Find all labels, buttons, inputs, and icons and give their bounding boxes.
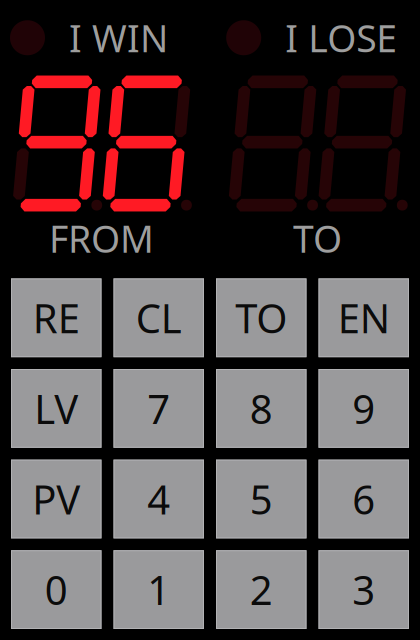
- button[interactable]: RE: [11, 278, 101, 357]
- staticText: 4: [147, 472, 170, 525]
- button[interactable]: PV: [11, 460, 101, 538]
- staticText: I WIN: [69, 13, 168, 63]
- staticText: LV: [34, 382, 78, 435]
- button[interactable]: 3: [318, 550, 409, 629]
- button[interactable]: 7: [113, 369, 204, 448]
- button[interactable]: 5: [216, 460, 306, 538]
- button[interactable]: TO: [216, 278, 306, 357]
- button[interactable]: 1: [113, 550, 204, 629]
- button[interactable]: 8: [216, 369, 306, 448]
- staticText: 8: [250, 382, 273, 435]
- staticText: TO: [235, 291, 287, 344]
- button[interactable]: 9: [318, 369, 409, 448]
- button[interactable]: 6: [318, 460, 409, 538]
- staticText: EN: [338, 291, 390, 344]
- staticText: PV: [32, 472, 80, 525]
- staticText: FROM: [49, 213, 154, 263]
- button[interactable]: 2: [216, 550, 306, 629]
- staticText: 3: [352, 563, 375, 616]
- staticText: 9: [352, 382, 375, 435]
- staticText: 0: [45, 563, 68, 616]
- button[interactable]: EN: [318, 278, 409, 357]
- button[interactable]: 0: [11, 550, 101, 629]
- staticText: 7: [147, 382, 170, 435]
- button[interactable]: LV: [11, 369, 101, 448]
- button[interactable]: 4: [113, 460, 204, 538]
- staticText: I LOSE: [285, 13, 397, 63]
- staticText: 6: [352, 472, 375, 525]
- staticText: TO: [293, 213, 342, 263]
- staticText: 2: [250, 563, 273, 616]
- staticText: CL: [136, 291, 182, 344]
- staticText: RE: [33, 291, 80, 344]
- staticText: 1: [147, 563, 170, 616]
- button[interactable]: CL: [113, 278, 204, 357]
- staticText: 5: [250, 472, 273, 525]
